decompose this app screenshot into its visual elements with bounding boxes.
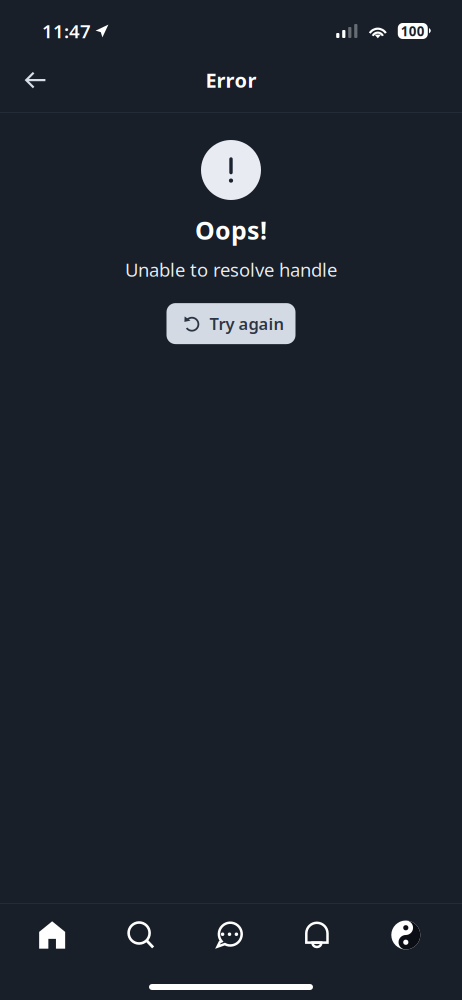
button[interactable]: Messages (185, 904, 273, 966)
staticText: Unable to resolve handle (125, 257, 337, 282)
staticText: 100 (401, 22, 425, 40)
staticText: 11:47 (42, 19, 91, 43)
button[interactable]: Try again (166, 303, 295, 344)
staticText: Oops! (195, 213, 267, 247)
staticText: Error (205, 67, 256, 93)
button[interactable]: Home (8, 904, 96, 966)
staticText: Try again (209, 312, 284, 335)
button[interactable]: Profile (362, 904, 450, 966)
button[interactable]: Notifications (273, 904, 362, 966)
button[interactable]: Search (96, 904, 185, 966)
button[interactable]: Back (0, 57, 62, 102)
